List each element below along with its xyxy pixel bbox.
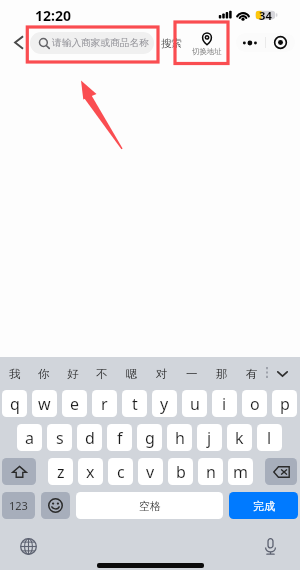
staticText: 对	[156, 367, 168, 381]
button[interactable]: 我	[0, 357, 29, 390]
button[interactable]: h	[167, 424, 192, 451]
button[interactable]: Close mini program	[266, 33, 295, 52]
button[interactable]: 完成	[229, 492, 298, 519]
staticText: p	[280, 393, 290, 415]
staticText: c	[117, 461, 125, 483]
staticText: i	[222, 393, 227, 415]
button[interactable]: v	[138, 458, 163, 485]
staticText: d	[85, 427, 95, 449]
button[interactable]: u	[182, 390, 207, 417]
button[interactable]: x	[78, 458, 103, 485]
staticText: g	[145, 427, 155, 449]
staticText: 切换地址	[192, 47, 222, 56]
staticText: r	[101, 393, 108, 415]
staticText: k	[235, 427, 244, 449]
staticText: b	[176, 461, 186, 483]
button[interactable]: f	[107, 424, 132, 451]
button[interactable]: 有	[237, 357, 267, 390]
button[interactable]: Emoji keyboard	[41, 492, 70, 519]
staticText: o	[250, 393, 260, 415]
staticText: j	[207, 427, 212, 449]
staticText: 34	[259, 8, 272, 23]
button[interactable]: z	[48, 458, 73, 485]
button[interactable]: 那	[207, 357, 237, 390]
staticText: 请输入商家或商品名称	[52, 37, 149, 49]
staticText: 我	[9, 367, 21, 381]
staticText: v	[146, 461, 155, 483]
button[interactable]: n	[198, 458, 223, 485]
button[interactable]: t	[122, 390, 147, 417]
button[interactable]: 123	[2, 492, 35, 519]
staticText: 有	[246, 367, 258, 381]
button[interactable]: k	[227, 424, 252, 451]
staticText: 好	[67, 367, 79, 381]
button[interactable]: c	[108, 458, 133, 485]
button[interactable]: More	[236, 33, 265, 52]
button[interactable]: Back	[6, 30, 30, 54]
button[interactable]: 你	[29, 357, 58, 390]
button[interactable]: 对	[147, 357, 177, 390]
staticText: s	[56, 427, 64, 449]
button[interactable]: Shift	[2, 458, 36, 485]
staticText: n	[206, 461, 216, 483]
button[interactable]: Expand suggestions	[268, 357, 296, 390]
button[interactable]: 空格	[76, 492, 223, 519]
staticText: 你	[38, 367, 50, 381]
button[interactable]: m	[228, 458, 253, 485]
button[interactable]: w	[32, 390, 57, 417]
staticText: e	[70, 393, 80, 415]
button[interactable]: o	[242, 390, 267, 417]
staticText: 空格	[139, 499, 161, 513]
button[interactable]: s	[47, 424, 72, 451]
button[interactable]: Switch keyboard language	[0, 535, 57, 557]
staticText: 12:20	[35, 6, 71, 25]
staticText: 一	[186, 367, 198, 381]
button[interactable]: 嗯	[117, 357, 147, 390]
staticText: 那	[216, 367, 228, 381]
button[interactable]: d	[77, 424, 102, 451]
button[interactable]: e	[62, 390, 87, 417]
staticText: q	[10, 393, 20, 415]
button[interactable]: q	[2, 390, 27, 417]
staticText: w	[38, 393, 51, 415]
button[interactable]: Voice input	[240, 535, 300, 557]
staticText: z	[57, 461, 65, 483]
button[interactable]: Backspace	[265, 458, 297, 485]
button[interactable]: l	[257, 424, 282, 451]
staticText: l	[267, 427, 272, 449]
button[interactable]: y	[152, 390, 177, 417]
button[interactable]: 请输入商家或商品名称	[30, 32, 154, 54]
button[interactable]: p	[272, 390, 297, 417]
button[interactable]: b	[168, 458, 193, 485]
staticText: t	[132, 393, 138, 415]
button[interactable]: g	[137, 424, 162, 451]
staticText: u	[190, 393, 200, 415]
staticText: x	[86, 461, 95, 483]
button[interactable]: 好	[58, 357, 87, 390]
button[interactable]: 搜索	[159, 32, 183, 54]
button[interactable]: r	[92, 390, 117, 417]
button[interactable]: a	[17, 424, 42, 451]
staticText: y	[160, 393, 169, 415]
button[interactable]: 一	[177, 357, 207, 390]
button[interactable]: j	[197, 424, 222, 451]
button[interactable]: 不	[87, 357, 117, 390]
staticText: 123	[9, 498, 28, 513]
staticText: 完成	[253, 499, 275, 513]
staticText: m	[233, 461, 248, 483]
staticText: f	[117, 427, 123, 449]
staticText: 嗯	[126, 367, 138, 381]
staticText: 不	[96, 367, 108, 381]
staticText: h	[175, 427, 185, 449]
staticText: 搜索	[161, 37, 182, 50]
staticText: a	[25, 427, 34, 449]
button[interactable]: 切换地址	[184, 33, 230, 59]
button[interactable]: i	[212, 390, 237, 417]
